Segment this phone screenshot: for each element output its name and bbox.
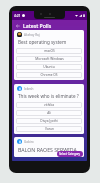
staticText: Chrome OS xyxy=(40,73,58,77)
button[interactable]: Divya Jyothi xyxy=(16,118,82,124)
button[interactable]: lokesh xyxy=(14,84,84,134)
button[interactable]: vithika xyxy=(16,102,82,108)
staticText: Gabirx xyxy=(24,140,34,144)
staticText: Latest Polls xyxy=(23,22,52,29)
button[interactable]: Varun xyxy=(16,126,82,132)
staticText: Divya Jyothi xyxy=(40,119,58,123)
button[interactable]: macOS xyxy=(16,48,82,54)
staticText: Varun xyxy=(45,127,54,131)
button[interactable]: Back xyxy=(14,22,21,29)
button[interactable]: Gabirx xyxy=(14,137,84,157)
button[interactable]: Select Category xyxy=(57,151,83,157)
staticText: Ali xyxy=(47,111,51,115)
staticText: BALON RAOES SERWIDA xyxy=(18,146,77,153)
staticText: 4:21 xyxy=(14,13,21,18)
staticText: Akshay Raj xyxy=(24,33,40,37)
staticText: Microsoft Windows xyxy=(35,57,64,61)
button[interactable]: Ali xyxy=(16,110,82,116)
staticText: macOS xyxy=(44,49,55,53)
staticText: Select Category xyxy=(59,152,81,156)
button[interactable]: Microsoft Windows xyxy=(16,56,82,62)
staticText: vithika xyxy=(44,103,54,107)
button[interactable]: Ubuntu xyxy=(16,64,82,70)
staticText: Best operating system xyxy=(18,39,67,45)
staticText: lokesh xyxy=(24,87,34,91)
staticText: Ubuntu xyxy=(43,65,55,69)
staticText: This week who is eliminate ? xyxy=(18,93,79,99)
button[interactable]: Akshay Raj xyxy=(14,30,84,80)
button[interactable]: Chrome OS xyxy=(16,72,82,78)
